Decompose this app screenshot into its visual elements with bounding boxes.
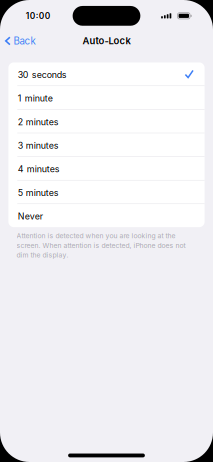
button[interactable]: Back: [0, 29, 40, 53]
button[interactable]: 2 minutes: [8, 110, 205, 133]
button[interactable]: Never: [8, 204, 205, 227]
button[interactable]: 5 minutes: [8, 180, 205, 203]
button[interactable]: 3 minutes: [8, 133, 205, 156]
staticText: Attention is detected when you are looki…: [17, 232, 186, 259]
staticText: 2 minutes: [18, 116, 59, 127]
staticText: 3 minutes: [18, 140, 59, 151]
button[interactable]: 1 minute: [8, 86, 205, 109]
staticText: Auto-Lock: [82, 35, 130, 47]
staticText: 5 minutes: [18, 187, 59, 198]
staticText: Never: [18, 211, 43, 222]
staticText: 30 seconds: [18, 69, 67, 80]
staticText: 4 minutes: [18, 164, 60, 174]
staticText: 1 minute: [18, 93, 53, 104]
staticText: 10:00: [26, 11, 51, 21]
staticText: Back: [13, 35, 35, 47]
button[interactable]: 30 seconds: [8, 62, 205, 85]
button[interactable]: 4 minutes: [8, 157, 205, 180]
